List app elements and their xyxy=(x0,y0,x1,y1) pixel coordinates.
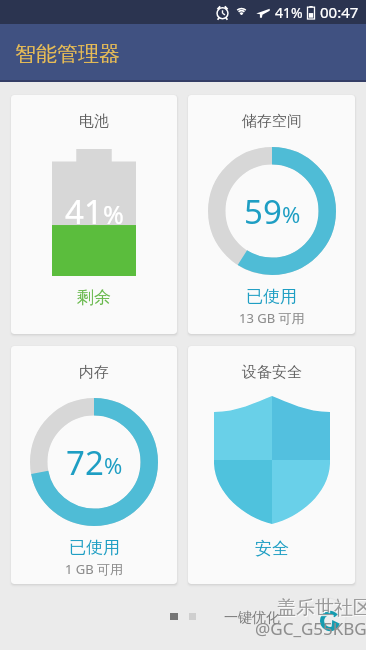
staticText: @GC_G55KBGB xyxy=(255,617,366,640)
staticText: 41 xyxy=(65,189,103,234)
staticText: % xyxy=(282,199,301,229)
staticText: 设备安全 xyxy=(242,363,302,382)
staticText: 储存空间 xyxy=(242,112,302,131)
staticText: % xyxy=(103,197,124,231)
staticText: 已使用 xyxy=(246,286,297,307)
staticText: 剩余 xyxy=(77,287,111,308)
staticText: 00:47 xyxy=(320,2,359,22)
button[interactable]: 内存 xyxy=(11,346,177,584)
staticText: % xyxy=(104,450,123,480)
button[interactable]: 储存空间 xyxy=(188,95,355,334)
staticText: 内存 xyxy=(79,363,109,382)
staticText: 已使用 xyxy=(69,537,120,558)
staticText: 智能管理器 xyxy=(15,41,120,67)
staticText: 59 xyxy=(244,189,282,234)
staticText: 电池 xyxy=(79,112,109,131)
button[interactable]: 电池 xyxy=(11,95,177,334)
staticText: 1 GB 可用 xyxy=(65,560,124,578)
staticText: 盖乐世社区 xyxy=(277,596,366,620)
staticText: 41% xyxy=(275,3,303,22)
button[interactable]: 一键优化 xyxy=(224,609,280,627)
staticText: 13 GB 可用 xyxy=(239,309,305,327)
staticText: 安全 xyxy=(255,538,289,559)
button[interactable]: 设备安全 xyxy=(188,346,355,584)
staticText: 72 xyxy=(66,440,104,485)
